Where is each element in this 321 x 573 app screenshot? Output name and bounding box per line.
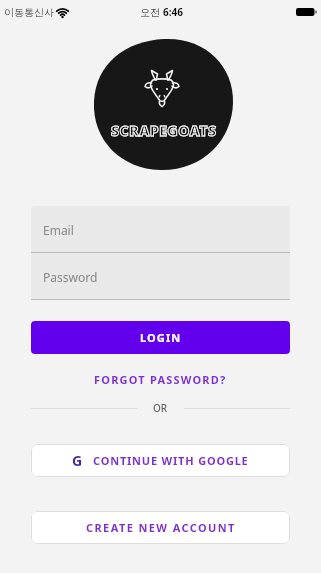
button[interactable]: Email bbox=[31, 206, 290, 253]
button[interactable]: Password bbox=[31, 253, 290, 300]
button[interactable]: FORGOT PASSWORD? bbox=[94, 372, 227, 387]
staticText: SCRAPEGOATS bbox=[111, 121, 217, 140]
staticText: G bbox=[72, 451, 83, 470]
staticText: OR bbox=[153, 401, 168, 415]
staticText: CREATE NEW ACCOUNT bbox=[86, 520, 236, 535]
staticText: 이동통신사 bbox=[4, 6, 54, 19]
staticText: Email bbox=[43, 222, 74, 238]
button[interactable]: LOGIN bbox=[31, 321, 290, 354]
staticText: Password bbox=[43, 269, 98, 285]
button[interactable]: CREATE NEW ACCOUNT bbox=[31, 511, 290, 544]
staticText: 오전 bbox=[140, 5, 163, 19]
staticText: LOGIN bbox=[140, 330, 182, 345]
staticText: 6:46 bbox=[163, 5, 183, 19]
staticText: CONTINUE WITH GOOGLE bbox=[93, 453, 249, 468]
button[interactable]: G bbox=[31, 444, 290, 477]
